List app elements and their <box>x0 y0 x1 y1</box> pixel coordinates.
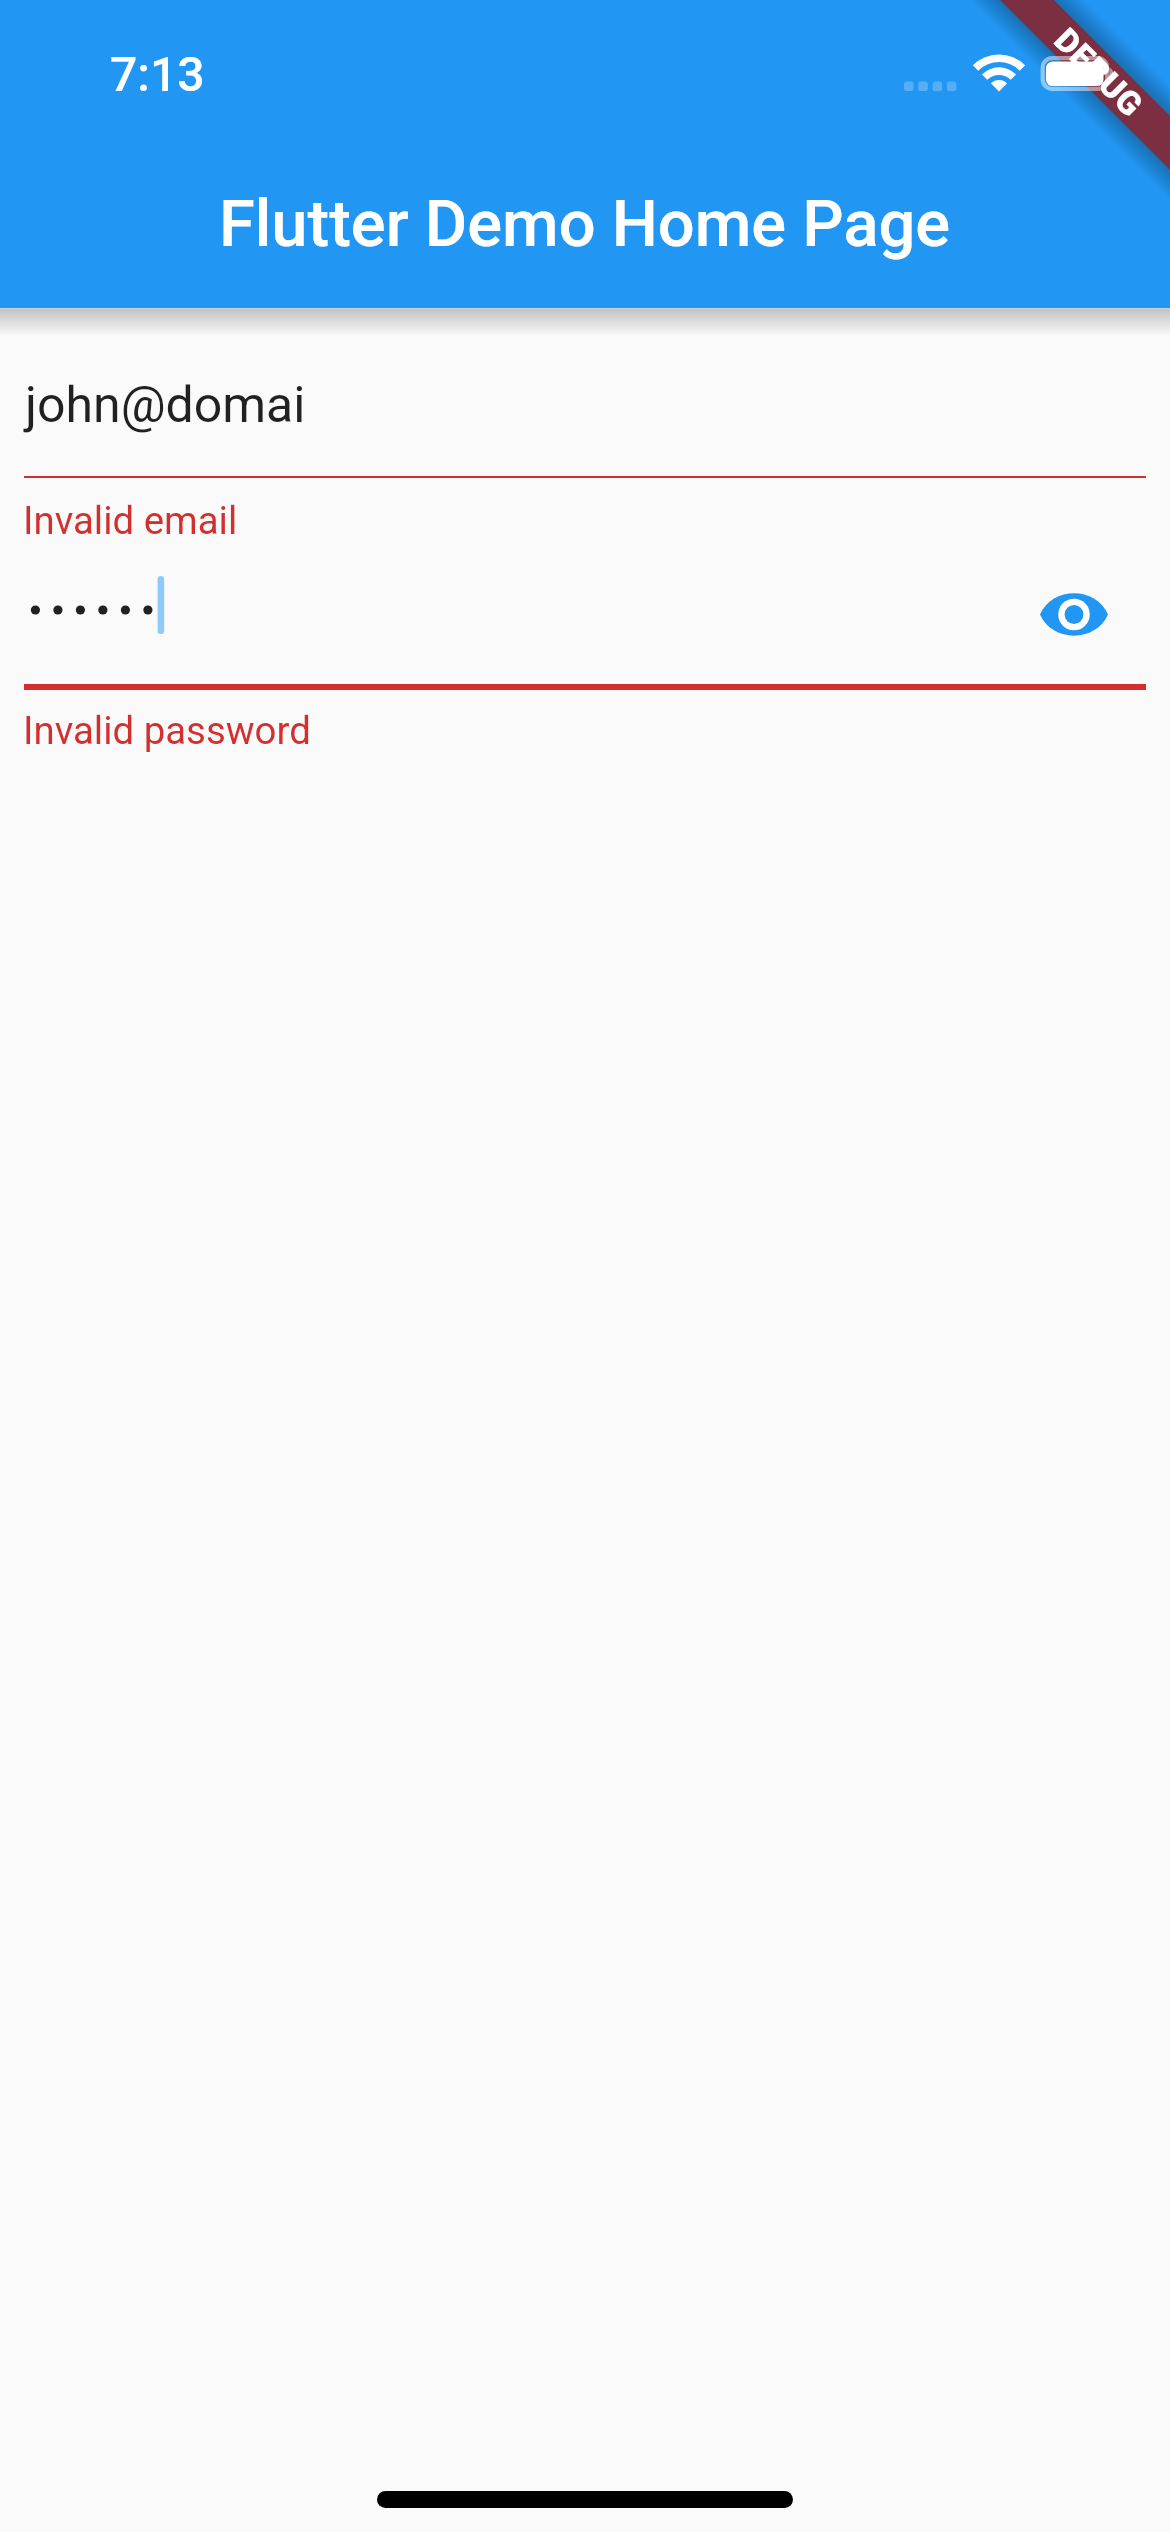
staticText: 7:13 <box>110 46 205 102</box>
staticText: Flutter Demo Home Page <box>219 186 951 262</box>
button[interactable] <box>0 556 1170 684</box>
staticText: john@domai <box>25 376 306 435</box>
staticText: Invalid email <box>23 498 238 543</box>
staticText: Invalid password <box>23 708 311 753</box>
staticText: DEBUG <box>1047 20 1151 124</box>
button[interactable]: john@domai <box>0 330 1170 478</box>
button[interactable]: Show password <box>1026 566 1122 662</box>
